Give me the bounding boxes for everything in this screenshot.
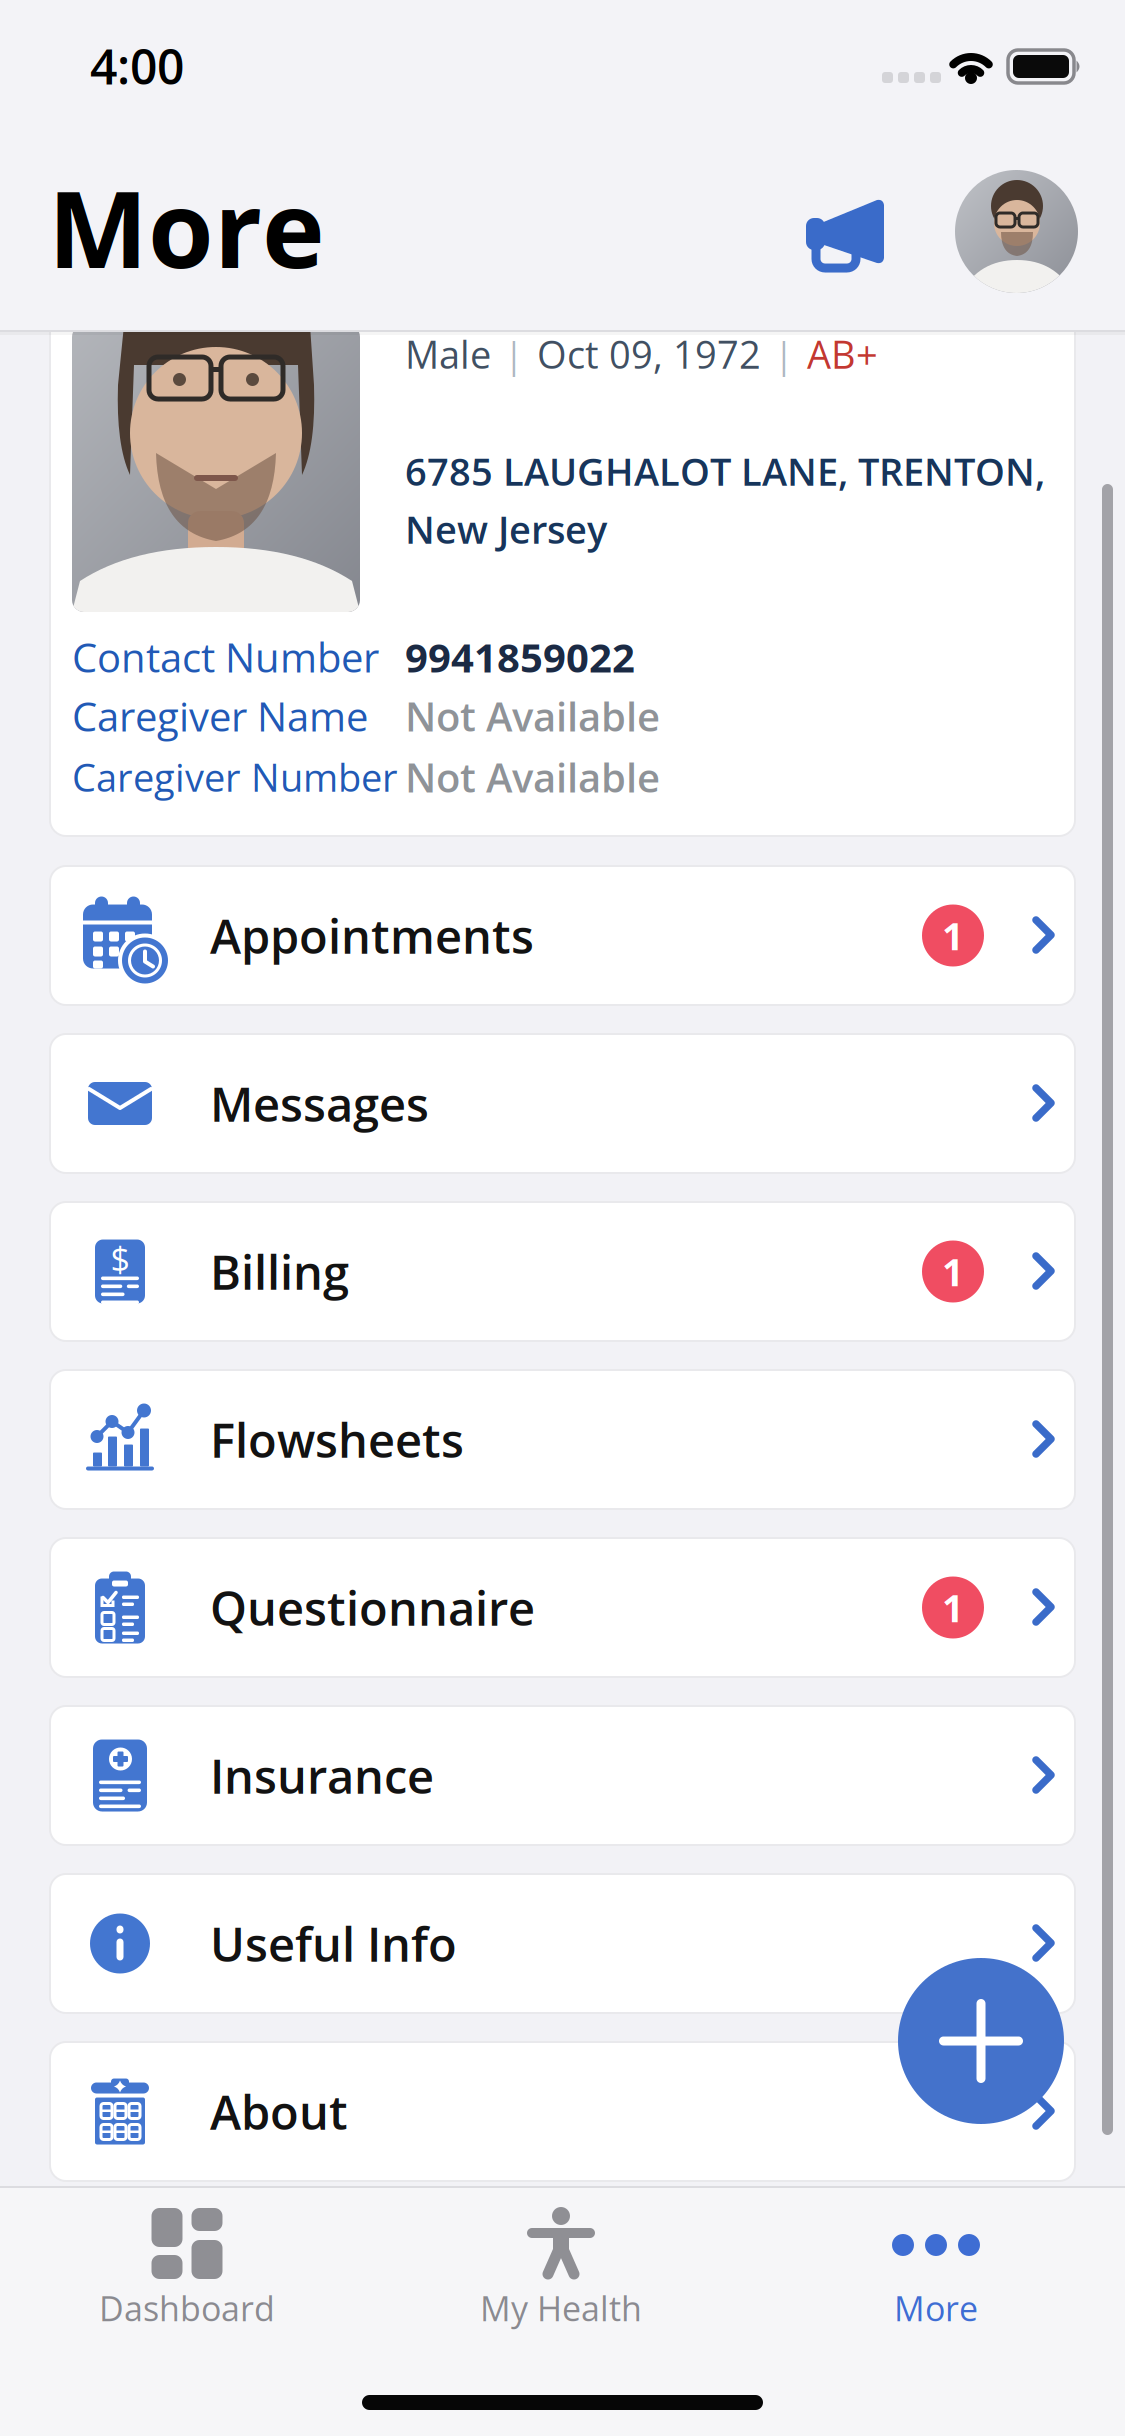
staticText: Questionnaire bbox=[210, 1575, 535, 1639]
staticText: About bbox=[210, 2079, 348, 2143]
staticText: 9941859022 bbox=[405, 630, 635, 684]
staticText: Contact Number bbox=[72, 630, 379, 684]
staticText: Useful Info bbox=[210, 1911, 457, 1975]
button[interactable]: Announcements bbox=[806, 198, 888, 270]
staticText: Insurance bbox=[210, 1743, 434, 1807]
staticText: Dashboard bbox=[99, 2285, 275, 2331]
staticText: Not Available bbox=[405, 689, 660, 743]
button[interactable]: Add bbox=[898, 1958, 1064, 2124]
button[interactable]: About bbox=[50, 2042, 1075, 2181]
staticText: $ bbox=[110, 1235, 129, 1282]
staticText: New Jersey bbox=[405, 503, 607, 555]
button[interactable]: Appointments bbox=[50, 866, 1075, 1005]
staticText: More bbox=[48, 155, 325, 299]
staticText: My Health bbox=[480, 2285, 642, 2331]
button[interactable]: Profile bbox=[955, 170, 1078, 293]
button[interactable]: Insurance bbox=[50, 1706, 1075, 1845]
button[interactable]: More bbox=[771, 2186, 1101, 2376]
staticText: Messages bbox=[210, 1071, 429, 1135]
staticText: | bbox=[774, 329, 794, 378]
staticText: Flowsheets bbox=[210, 1407, 464, 1471]
button[interactable]: Dashboard bbox=[22, 2186, 352, 2376]
button[interactable]: Useful Info bbox=[50, 1874, 1075, 2013]
staticText: 1 bbox=[942, 1246, 964, 1297]
staticText: 4:00 bbox=[90, 33, 184, 99]
staticText: More bbox=[894, 2285, 978, 2331]
staticText: | bbox=[504, 329, 524, 378]
staticText: Oct 09, 1972 bbox=[537, 328, 761, 380]
staticText: 6785 LAUGHALOT LANE, TRENTON, bbox=[405, 445, 1045, 497]
staticText: Billing bbox=[210, 1239, 349, 1303]
staticText: Male bbox=[405, 328, 491, 380]
button[interactable]: Questionnaire bbox=[50, 1538, 1075, 1677]
staticText: Caregiver Name bbox=[72, 689, 368, 743]
staticText: AB+ bbox=[807, 328, 878, 380]
staticText: 1 bbox=[942, 910, 964, 961]
button[interactable]: Messages bbox=[50, 1034, 1075, 1173]
button[interactable]: $ bbox=[50, 1202, 1075, 1341]
staticText: Not Available bbox=[405, 750, 660, 804]
staticText: Caregiver Number bbox=[72, 751, 398, 803]
button[interactable]: Flowsheets bbox=[50, 1370, 1075, 1509]
button[interactable]: My Health bbox=[396, 2186, 726, 2376]
staticText: 1 bbox=[942, 1582, 964, 1633]
staticText: Appointments bbox=[210, 903, 534, 967]
